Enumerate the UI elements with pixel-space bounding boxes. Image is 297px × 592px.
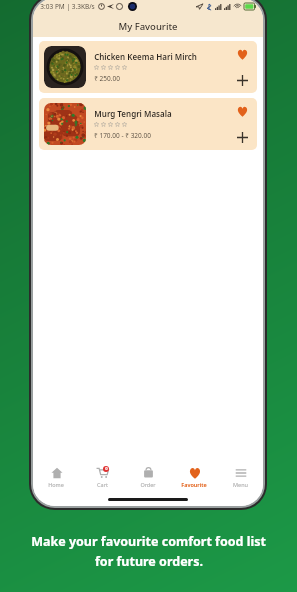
button[interactable]: Add to cart — [234, 72, 250, 88]
button[interactable]: Home — [33, 464, 79, 490]
staticText: Favourite — [181, 481, 207, 488]
staticText: Make your favourite comfort food list — [31, 533, 266, 550]
button[interactable]: Chicken Keema Hari Mirch — [39, 41, 257, 93]
button[interactable]: Favourite — [234, 46, 250, 62]
staticText: Murg Tengri Masala — [94, 108, 172, 119]
staticText: Chicken Keema Hari Mirch — [94, 51, 197, 62]
staticText: 3:03 PM | 3.3KB/s — [40, 2, 95, 11]
staticText: Cart — [97, 481, 108, 488]
button[interactable]: Murg Tengri Masala — [39, 98, 257, 150]
staticText: ₹ 250.00 — [94, 74, 120, 83]
staticText: Menu — [233, 481, 248, 488]
staticText: Home — [48, 481, 64, 488]
button[interactable]: Add to cart — [234, 129, 250, 145]
button[interactable]: 0 — [79, 464, 125, 490]
staticText: 0 — [105, 466, 108, 472]
button[interactable]: Menu — [217, 464, 263, 490]
staticText: Order — [140, 481, 156, 488]
button[interactable]: Order — [125, 464, 171, 490]
staticText: for future orders. — [95, 553, 203, 570]
staticText: My Favourite — [118, 20, 178, 33]
button[interactable]: Favourite — [171, 464, 217, 490]
button[interactable]: Favourite — [234, 103, 250, 119]
staticText: ₹ 170.00 - ₹ 320.00 — [94, 131, 151, 140]
